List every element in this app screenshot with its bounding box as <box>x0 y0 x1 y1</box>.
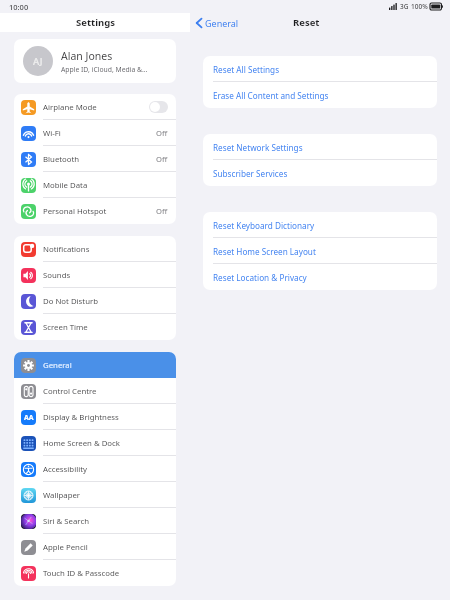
button[interactable]: Airplane Mode <box>14 94 176 120</box>
button[interactable]: Mobile Data <box>14 172 176 198</box>
staticText: Wi-Fi <box>43 128 61 139</box>
button[interactable]: Wallpaper <box>14 482 176 508</box>
staticText: Home Screen & Dock <box>43 438 120 449</box>
staticText: Off <box>156 128 168 138</box>
staticText: Apple ID, iCloud, Media &… <box>61 65 148 74</box>
staticText: Subscriber Services <box>213 168 288 179</box>
staticText: Bluetooth <box>43 154 80 165</box>
staticText: Off <box>156 206 168 216</box>
staticText: Reset All Settings <box>213 64 280 75</box>
button[interactable]: Back to General <box>196 17 239 29</box>
staticText: Reset Network Settings <box>213 142 303 153</box>
button[interactable]: Home Screen & Dock <box>14 430 176 456</box>
other: Back to General <box>196 18 202 28</box>
button[interactable]: Wi-Fi <box>14 120 176 146</box>
button[interactable]: Reset All Settings <box>203 56 437 82</box>
staticText: Off <box>156 154 168 164</box>
button[interactable]: Subscriber Services <box>203 160 437 186</box>
staticText: Personal Hotspot <box>43 206 107 217</box>
staticText: Accessibility <box>43 464 87 475</box>
staticText: Reset <box>293 16 320 29</box>
button[interactable]: AJ <box>14 39 176 83</box>
staticText: 10:00 <box>9 2 29 12</box>
staticText: Sounds <box>43 270 71 281</box>
button[interactable]: Do Not Disturb <box>14 288 176 314</box>
button[interactable]: Apple Pencil <box>14 534 176 560</box>
staticText: 3G <box>400 2 409 11</box>
button[interactable]: AA <box>14 404 176 430</box>
button[interactable]: Touch ID & Passcode <box>14 560 176 586</box>
button[interactable]: Reset Home Screen Layout <box>203 238 437 264</box>
staticText: Reset Keyboard Dictionary <box>213 220 315 231</box>
staticText: Do Not Disturb <box>43 296 99 307</box>
button[interactable]: Personal Hotspot <box>14 198 176 224</box>
staticText: Control Centre <box>43 386 97 397</box>
button[interactable]: Screen Time <box>14 314 176 340</box>
staticText: Airplane Mode <box>43 102 97 113</box>
button[interactable]: Sounds <box>14 262 176 288</box>
staticText: Settings <box>76 16 115 29</box>
staticText: 100% <box>411 2 428 11</box>
button[interactable]: Erase All Content and Settings <box>203 82 437 108</box>
staticText: General <box>43 360 72 371</box>
button[interactable]: Accessibility <box>14 456 176 482</box>
staticText: Apple Pencil <box>43 542 88 553</box>
staticText: Siri & Search <box>43 516 89 527</box>
staticText: Touch ID & Passcode <box>43 568 120 579</box>
staticText: General <box>205 17 239 29</box>
staticText: Alan Jones <box>61 49 113 63</box>
staticText: Reset Location & Privacy <box>213 272 307 283</box>
staticText: Notifications <box>43 244 90 255</box>
button[interactable]: Siri & Search <box>14 508 176 534</box>
staticText: Mobile Data <box>43 180 88 191</box>
staticText: Erase All Content and Settings <box>213 90 329 101</box>
staticText: Screen Time <box>43 322 88 333</box>
staticText: Wallpaper <box>43 490 81 501</box>
button[interactable]: General <box>14 352 176 378</box>
staticText: AA <box>24 413 34 422</box>
button[interactable]: Control Centre <box>14 378 176 404</box>
button[interactable]: Reset Keyboard Dictionary <box>203 212 437 238</box>
button[interactable]: Reset Network Settings <box>203 134 437 160</box>
button[interactable]: Bluetooth <box>14 146 176 172</box>
staticText: AJ <box>33 55 43 68</box>
staticText: Reset Home Screen Layout <box>213 246 316 257</box>
button[interactable]: Notifications <box>14 236 176 262</box>
button[interactable]: Airplane Mode toggle <box>149 101 168 113</box>
button[interactable]: Reset Location & Privacy <box>203 264 437 290</box>
staticText: Display & Brightness <box>43 412 119 423</box>
